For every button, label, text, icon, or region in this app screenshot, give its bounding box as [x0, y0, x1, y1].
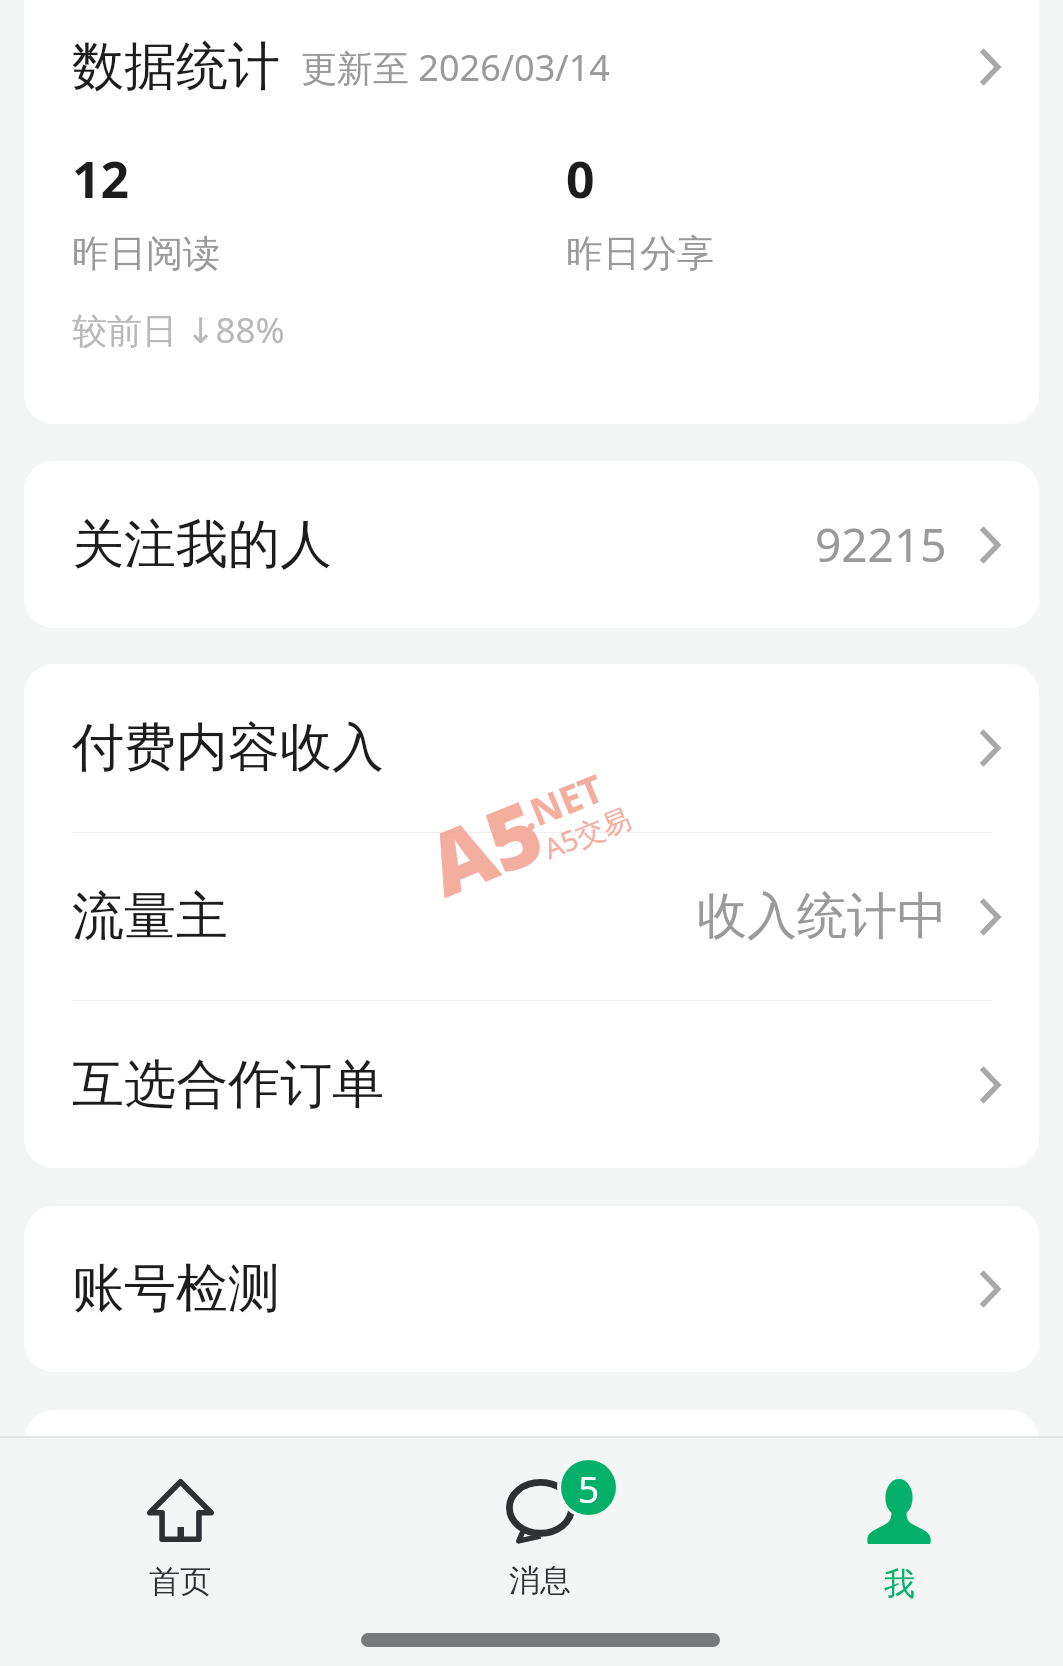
staticText: 付费内容收入 [72, 715, 384, 781]
staticText: 消息 [509, 1561, 571, 1600]
other: 消息 [506, 1479, 575, 1541]
staticText: 收入统计中 [697, 885, 947, 948]
staticText: 更新至 2026/03/14 [301, 43, 610, 92]
button[interactable]: 消息 [360, 1438, 720, 1608]
other: 首页 [147, 1479, 214, 1542]
button[interactable]: 首页 [0, 1438, 360, 1608]
staticText: A5 [410, 771, 559, 921]
staticText: A5交易 [538, 798, 636, 867]
staticText: 数据统计 [72, 34, 280, 100]
staticText: 92215 [815, 513, 947, 576]
button[interactable]: 数据统计 [24, 0, 1039, 134]
staticText: 首页 [149, 1562, 211, 1601]
staticText: 互选合作订单 [72, 1052, 384, 1118]
staticText: 账号检测 [72, 1256, 280, 1322]
button[interactable]: 关注我的人 [24, 461, 1039, 628]
staticText: 0 [566, 145, 595, 213]
staticText: 流量主 [72, 884, 228, 950]
staticText: 关注我的人 [72, 512, 332, 578]
button[interactable]: 我 [719, 1438, 1063, 1608]
button[interactable]: 流量主 [24, 833, 1039, 1000]
staticText: 较前日 ↓88% [72, 306, 285, 354]
button[interactable]: 账号检测 [24, 1206, 1039, 1372]
staticText: .NET [512, 761, 610, 841]
button[interactable]: 互选合作订单 [24, 1001, 1039, 1168]
staticText: 昨日分享 [566, 230, 714, 277]
staticText: 昨日阅读 [72, 230, 220, 277]
staticText: 5 [578, 1463, 600, 1513]
other: 我 [865, 1479, 933, 1544]
button[interactable]: 付费内容收入 [24, 664, 1039, 832]
staticText: 12 [72, 145, 130, 213]
staticText: 我 [884, 1564, 915, 1603]
